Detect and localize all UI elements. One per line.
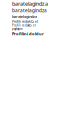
staticText: baratelagindza <box>12 14 37 19</box>
staticText: Profilini doldur <box>12 31 44 36</box>
staticText: Profili redaktə et <box>12 24 36 27</box>
staticText: Profili redaktə et <box>12 19 38 24</box>
staticText: baratelagindza <box>12 7 47 14</box>
staticText: paylaşım <box>12 27 22 31</box>
staticText: baratelagindza <box>12 0 48 7</box>
